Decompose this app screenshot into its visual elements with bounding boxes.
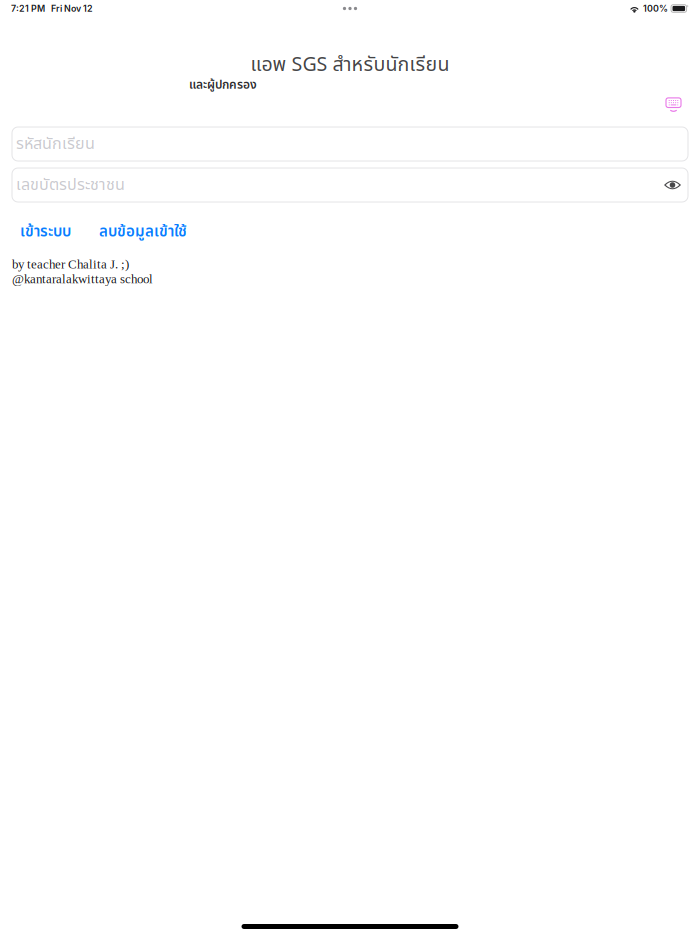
staticText: เลขบัตรประชาชน bbox=[16, 173, 125, 197]
staticText: @kantaralakwittaya school bbox=[12, 272, 153, 286]
button[interactable]: ลบข้อมูลเข้าใช้ bbox=[99, 222, 187, 242]
staticText: Fri Nov 12 bbox=[51, 3, 93, 14]
button[interactable]: Hide keyboard bbox=[662, 97, 685, 112]
staticText: ลบข้อมูลเข้าใช้ bbox=[99, 221, 187, 243]
staticText: เข้าระบบ bbox=[20, 221, 71, 243]
button[interactable]: เข้าระบบ bbox=[20, 222, 71, 242]
staticText: by teacher Chalita J. ;) bbox=[12, 257, 129, 271]
staticText: 7:21 PM bbox=[11, 3, 45, 14]
button[interactable]: รหัสนักเรียน bbox=[12, 127, 688, 161]
staticText: และผู้ปกครอง bbox=[189, 76, 257, 94]
staticText: 100% bbox=[643, 3, 668, 14]
button[interactable]: เลขบัตรประชาชน bbox=[12, 168, 688, 202]
staticText: รหัสนักเรียน bbox=[16, 132, 95, 156]
staticText: แอพ SGS สำหรับนักเรียน bbox=[250, 50, 449, 80]
